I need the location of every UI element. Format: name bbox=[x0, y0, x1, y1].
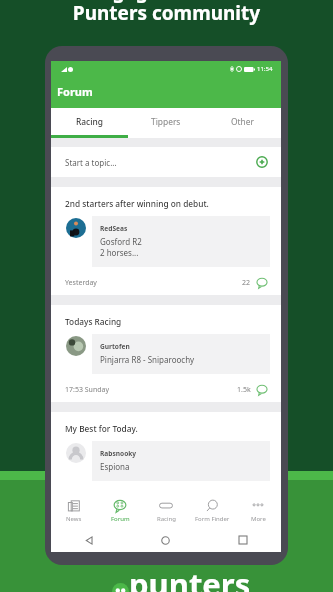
staticText: Form Finder bbox=[195, 515, 230, 523]
staticText: Gurtofen bbox=[100, 342, 130, 351]
staticText: Yesterday bbox=[65, 278, 97, 288]
button[interactable]: Start a topic... bbox=[65, 147, 268, 177]
staticText: Gosford R2 bbox=[100, 236, 142, 247]
button[interactable]: More bbox=[235, 494, 281, 528]
other: Back bbox=[85, 536, 94, 545]
staticText: 2nd starters after winning on debut. bbox=[65, 198, 209, 209]
staticText: 2 horses... bbox=[100, 247, 139, 258]
staticText: Forum bbox=[57, 84, 93, 99]
button[interactable]: 2nd starters after winning on debut. bbox=[51, 187, 281, 295]
staticText: Forum bbox=[111, 515, 130, 523]
staticText: 17:53 Sunday bbox=[65, 385, 110, 395]
staticText: Other bbox=[231, 116, 254, 127]
button[interactable]: Todays Racing bbox=[51, 305, 281, 402]
button[interactable]: Other bbox=[204, 108, 281, 135]
staticText: Tippers bbox=[151, 116, 181, 127]
staticText: Start a topic... bbox=[65, 157, 117, 168]
staticText: More bbox=[251, 515, 266, 523]
staticText: News bbox=[66, 515, 82, 523]
staticText: Pinjarra R8 - Sniparoochy bbox=[100, 354, 195, 365]
button[interactable]: Form Finder bbox=[189, 494, 235, 528]
button[interactable]: News bbox=[51, 494, 97, 528]
staticText: My Best for Today. bbox=[65, 423, 138, 434]
staticText: 11:54 bbox=[257, 65, 273, 73]
staticText: punters bbox=[129, 563, 251, 592]
staticText: Espiona bbox=[100, 461, 130, 472]
staticText: RedSeas bbox=[100, 224, 128, 233]
button[interactable]: Forum bbox=[97, 494, 143, 528]
staticText: Todays Racing bbox=[65, 316, 122, 327]
other: Home bbox=[161, 536, 170, 545]
staticText: Racing bbox=[157, 515, 176, 523]
button[interactable]: Racing bbox=[143, 494, 189, 528]
other: Recents bbox=[239, 536, 247, 544]
button[interactable]: Racing bbox=[51, 108, 127, 135]
staticText: Rabsnooky bbox=[100, 449, 137, 458]
button[interactable]: My Best for Today. bbox=[51, 412, 281, 494]
button[interactable]: Tippers bbox=[127, 108, 204, 135]
staticText: 22 bbox=[242, 278, 251, 288]
staticText: Engage with the Punters community bbox=[0, 0, 333, 26]
staticText: Racing bbox=[76, 116, 103, 127]
staticText: 1.5k bbox=[237, 385, 251, 395]
